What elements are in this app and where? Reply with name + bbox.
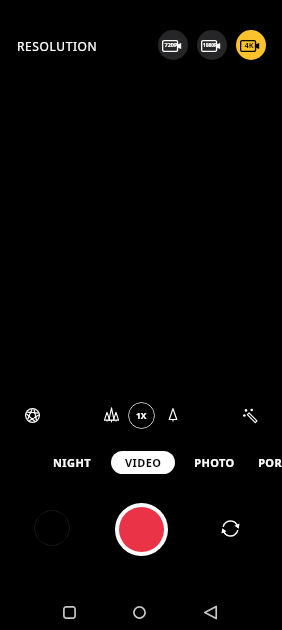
button[interactable]: PORTRAIT [252,451,282,474]
button[interactable]: Telephoto [159,401,187,429]
button[interactable]: 720P [158,30,188,60]
staticText: NIGHT [53,455,91,470]
staticText: PHOTO [194,455,235,470]
staticText: 1080P [203,42,217,49]
button[interactable]: RESOLUTION [9,31,105,59]
button[interactable]: VIDEO [111,451,175,474]
button[interactable]: Switch camera [216,514,244,542]
button[interactable]: Shooting mode [18,401,46,429]
button[interactable]: PHOTO [182,451,246,474]
button[interactable]: 1X [128,402,155,429]
button[interactable]: Home [117,590,161,630]
staticText: 720P [164,41,178,49]
button[interactable]: Ultra wide [97,401,125,429]
button[interactable]: Gallery [34,510,70,546]
staticText: VIDEO [125,455,162,470]
staticText: 4K [244,40,254,50]
button[interactable]: NIGHT [40,451,104,474]
staticText: PORTRAIT [258,455,282,470]
button[interactable]: Effects [236,401,264,429]
button[interactable]: 4K [236,30,266,60]
button[interactable]: Back [188,590,232,630]
button[interactable]: Recents [47,590,91,630]
staticText: 1X [136,410,147,422]
button[interactable]: Record [115,503,168,556]
button[interactable]: 1080P [197,30,227,60]
staticText: RESOLUTION [17,38,98,54]
